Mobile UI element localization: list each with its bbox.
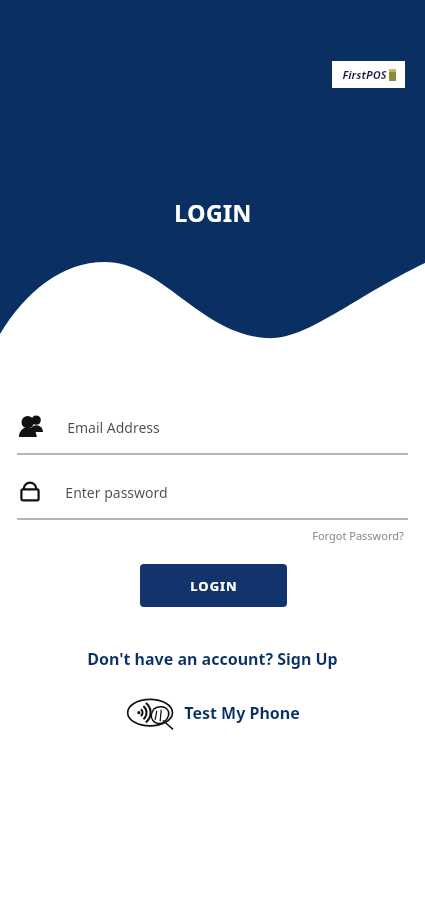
staticText: Forgot Password? <box>312 528 404 543</box>
staticText: LOGIN <box>190 577 238 595</box>
staticText: Enter password <box>65 483 168 502</box>
button[interactable]: LOGIN <box>140 564 287 607</box>
staticText: Don't have an account? Sign Up <box>87 648 338 670</box>
staticText: LOGIN <box>174 197 252 228</box>
staticText: Email Address <box>67 418 160 437</box>
button[interactable]: Account <box>17 405 408 449</box>
staticText: Test My Phone <box>184 702 300 724</box>
staticText: FirstPOS <box>342 67 387 82</box>
button[interactable]: Contactless <box>122 694 304 732</box>
other: Password <box>17 479 43 505</box>
other: Contactless <box>126 696 182 730</box>
button[interactable]: Password <box>17 470 408 514</box>
button[interactable]: Forgot Password? <box>308 524 408 547</box>
button[interactable]: FirstPOS logo <box>332 61 405 88</box>
button[interactable]: Don't have an account? Sign Up <box>81 645 344 673</box>
other: Account <box>17 412 47 442</box>
